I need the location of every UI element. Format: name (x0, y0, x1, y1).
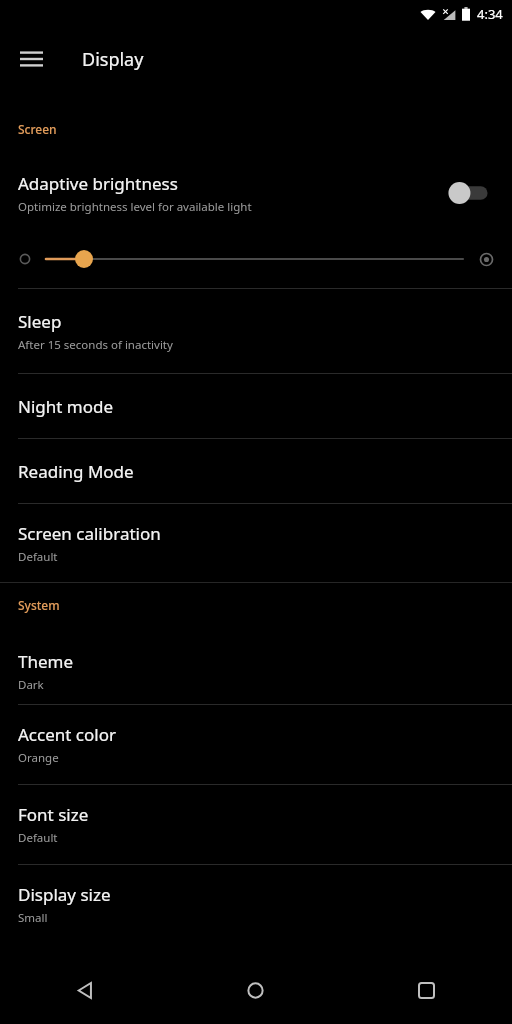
staticText: Display (82, 47, 144, 72)
staticText: Accent color (18, 723, 116, 746)
staticText: Small (18, 910, 48, 926)
staticText: Dark (18, 677, 44, 693)
staticText: Display size (18, 883, 111, 906)
button[interactable]: Accent color (0, 705, 512, 784)
button[interactable]: Theme (0, 638, 512, 704)
button[interactable]: Brightness level (0, 236, 512, 282)
staticText: Adaptive brightness (18, 172, 178, 195)
staticText: Night mode (18, 395, 114, 418)
staticText: After 15 seconds of inactivity (18, 337, 173, 353)
button[interactable]: Font size (0, 785, 512, 864)
button[interactable]: Sleep (0, 289, 512, 373)
staticText: Font size (18, 803, 89, 826)
staticText: Screen (18, 121, 57, 137)
staticText: Sleep (18, 310, 62, 333)
button[interactable]: Display size (0, 865, 512, 944)
staticText: Default (18, 549, 58, 565)
button[interactable]: Night mode (0, 374, 512, 438)
staticText: Theme (18, 650, 74, 673)
staticText: Orange (18, 750, 59, 766)
staticText: System (18, 597, 60, 613)
staticText: Optimize brightness level for available … (18, 199, 252, 215)
button[interactable]: Recent apps (341, 956, 512, 1024)
button[interactable]: Reading Mode (0, 439, 512, 503)
staticText: Reading Mode (18, 460, 134, 483)
button[interactable]: Screen calibration (0, 504, 512, 582)
button[interactable]: Back (0, 956, 170, 1024)
staticText: Default (18, 830, 58, 846)
staticText: Screen calibration (18, 522, 161, 545)
button[interactable]: Adaptive brightness (0, 162, 512, 224)
button[interactable]: Open navigation menu (8, 36, 54, 82)
button[interactable]: Home (170, 956, 341, 1024)
staticText: 4:34 (477, 5, 503, 23)
